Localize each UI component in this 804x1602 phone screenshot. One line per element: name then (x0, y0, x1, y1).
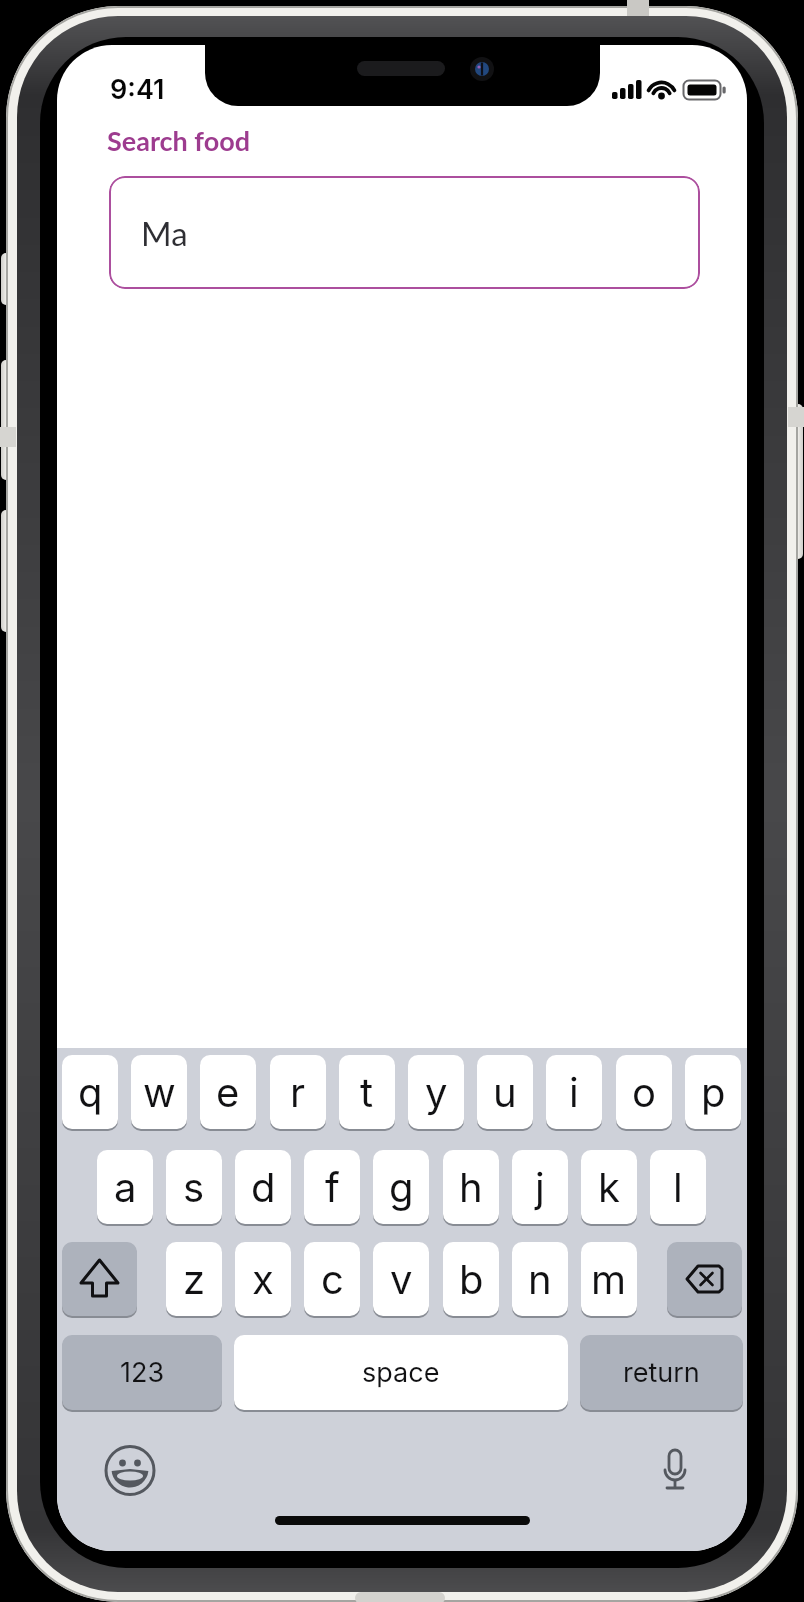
staticText: return (623, 1356, 700, 1389)
staticText: d (251, 1163, 276, 1211)
staticText: y (425, 1068, 448, 1116)
staticText: z (183, 1255, 206, 1303)
button[interactable]: c (304, 1242, 360, 1316)
button[interactable]: x (235, 1242, 291, 1316)
button[interactable]: d (235, 1150, 291, 1224)
staticText: a (114, 1163, 137, 1211)
staticText: l (673, 1163, 683, 1211)
button[interactable]: p (685, 1055, 741, 1129)
staticText: Ma (141, 213, 188, 253)
button[interactable]: h (443, 1150, 499, 1224)
button[interactable]: space (234, 1335, 568, 1410)
staticText: f (325, 1163, 340, 1211)
staticText: c (321, 1255, 344, 1303)
button[interactable]: r (270, 1055, 326, 1129)
button[interactable] (649, 1442, 701, 1494)
staticText: e (216, 1068, 240, 1116)
staticText: r (290, 1068, 306, 1116)
staticText: j (535, 1163, 545, 1211)
button[interactable]: t (339, 1055, 395, 1129)
staticText: x (252, 1255, 274, 1303)
button[interactable]: 123 (62, 1335, 222, 1410)
button[interactable]: n (512, 1242, 568, 1316)
staticText: 9:41 (110, 73, 165, 106)
staticText: p (701, 1068, 726, 1116)
button[interactable]: b (443, 1242, 499, 1316)
staticText: h (459, 1163, 483, 1211)
button[interactable]: z (166, 1242, 222, 1316)
staticText: u (493, 1068, 517, 1116)
staticText: n (528, 1255, 552, 1303)
button[interactable]: u (477, 1055, 533, 1129)
staticText: k (598, 1163, 620, 1211)
button[interactable]: j (512, 1150, 568, 1224)
button[interactable]: y (408, 1055, 464, 1129)
button[interactable]: f (304, 1150, 360, 1224)
button[interactable]: l (650, 1150, 706, 1224)
button[interactable]: k (581, 1150, 637, 1224)
staticText: t (360, 1068, 374, 1116)
button[interactable]: v (373, 1242, 429, 1316)
staticText: o (632, 1068, 656, 1116)
button[interactable]: return (580, 1335, 743, 1410)
staticText: m (591, 1255, 627, 1303)
button[interactable]: o (616, 1055, 672, 1129)
staticText: i (569, 1068, 579, 1116)
staticText: s (183, 1163, 205, 1211)
button[interactable]: s (166, 1150, 222, 1224)
staticText: 123 (120, 1356, 165, 1389)
button[interactable]: w (131, 1055, 187, 1129)
button[interactable] (104, 1444, 156, 1496)
button[interactable]: i (546, 1055, 602, 1129)
staticText: q (78, 1068, 103, 1116)
button[interactable]: e (200, 1055, 256, 1129)
button[interactable]: m (581, 1242, 637, 1316)
staticText: space (362, 1356, 440, 1389)
staticText: v (390, 1255, 413, 1303)
staticText: w (143, 1068, 176, 1116)
staticText: g (389, 1163, 414, 1211)
button[interactable]: q (62, 1055, 118, 1129)
button[interactable] (62, 1242, 137, 1316)
button[interactable] (667, 1242, 742, 1316)
staticText: Search food (107, 124, 251, 156)
staticText: b (459, 1255, 484, 1303)
button[interactable]: g (373, 1150, 429, 1224)
button[interactable]: Ma (109, 176, 700, 289)
button[interactable]: a (97, 1150, 153, 1224)
